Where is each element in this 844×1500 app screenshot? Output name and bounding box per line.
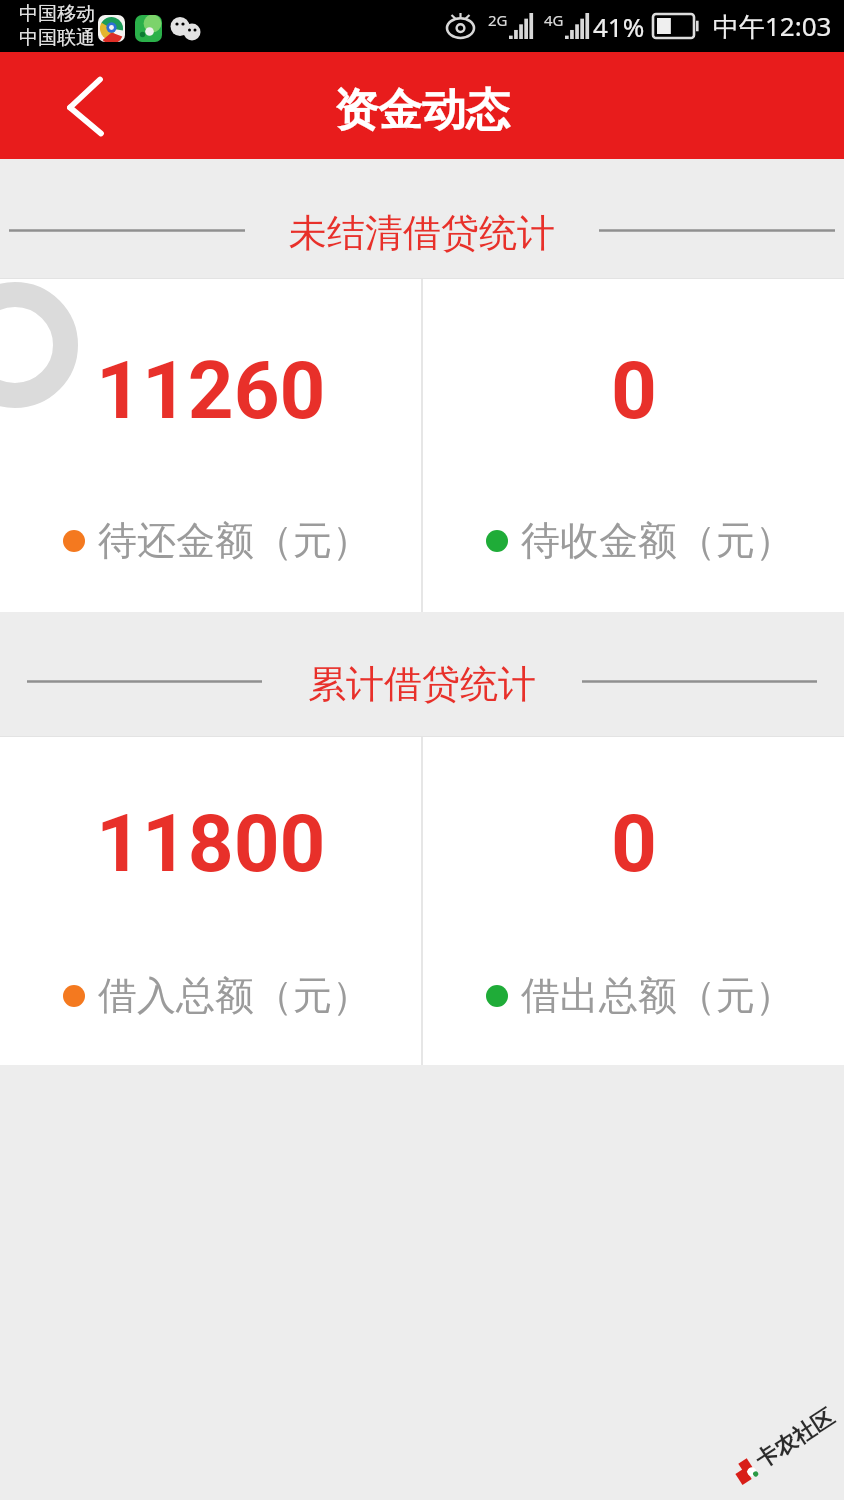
staticText: 借入总额（元）: [98, 971, 371, 1020]
button[interactable]: 0: [423, 278, 844, 612]
button[interactable]: 0: [423, 736, 844, 1065]
staticText: 2G: [488, 10, 508, 30]
staticText: 资金动态: [334, 83, 510, 138]
staticText: 中国移动: [19, 2, 95, 26]
staticText: 中午12:03: [713, 8, 832, 44]
staticText: 41%: [593, 9, 645, 44]
staticText: 11800: [96, 797, 326, 891]
staticText: 未结清借贷统计: [289, 209, 555, 257]
staticText: 待收金额（元）: [521, 516, 794, 565]
button[interactable]: Back: [0, 52, 120, 159]
staticText: 11260: [96, 344, 326, 438]
staticText: 累计借贷统计: [308, 660, 536, 708]
staticText: 待还金额（元）: [98, 516, 371, 565]
staticText: 中国联通: [19, 26, 95, 50]
staticText: 0: [611, 797, 657, 891]
button[interactable]: 11800: [0, 736, 421, 1065]
staticText: 借出总额（元）: [521, 971, 794, 1020]
staticText: 卡农社区: [750, 1403, 839, 1475]
button[interactable]: 11260: [0, 278, 421, 612]
staticText: 4G: [544, 10, 564, 30]
staticText: 0: [611, 344, 657, 438]
